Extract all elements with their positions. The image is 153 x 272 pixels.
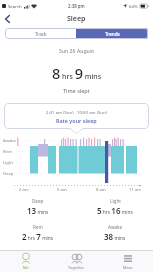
button[interactable]: More: [102, 252, 153, 272]
staticText: 2 am: [19, 187, 29, 193]
staticText: Track: [35, 31, 47, 37]
staticText: Sun 26 August: [59, 47, 95, 54]
button[interactable]: [0, 12, 14, 25]
staticText: 8 am: [96, 187, 106, 193]
staticText: Light: [110, 198, 121, 204]
staticText: Awake: [3, 138, 16, 144]
button[interactable]: Me: [0, 252, 51, 272]
staticText: Rem: [33, 224, 43, 230]
staticText: 5 hrs 16 mins: [97, 205, 133, 216]
staticText: 2:41 am (Sun) - 10:50 am (Sun): [46, 109, 107, 115]
staticText: 2 hrs 7 mins: [22, 231, 54, 242]
staticText: Trends: [105, 31, 120, 37]
staticText: 8 hrs 9 mins: [52, 63, 102, 83]
staticText: 13 mins: [27, 205, 49, 216]
staticText: Rate your sleep: [56, 117, 97, 124]
staticText: 64%: [129, 3, 138, 9]
staticText: Light: [3, 160, 13, 166]
button[interactable]: 2:41 am (Sun) - 10:50 am (Sun): [4, 103, 149, 129]
staticText: Time slept: [63, 87, 90, 94]
staticText: Search: [8, 3, 22, 9]
staticText: 2:38 pm: [68, 3, 85, 9]
staticText: Together: [68, 265, 85, 270]
staticText: Awake: [108, 224, 123, 230]
button[interactable]: Together: [51, 252, 102, 272]
staticText: More: [123, 265, 133, 270]
staticText: 5 am: [57, 187, 67, 193]
staticText: 38 mins: [104, 231, 126, 242]
staticText: Rem: [3, 149, 12, 155]
staticText: Sleep: [67, 14, 86, 24]
staticText: Deep: [3, 171, 14, 177]
staticText: Deep: [32, 198, 44, 204]
button[interactable]: Track: [5, 28, 76, 39]
button[interactable]: Trends: [76, 28, 148, 39]
staticText: 11 am: [129, 187, 142, 193]
staticText: Me: [23, 265, 29, 270]
